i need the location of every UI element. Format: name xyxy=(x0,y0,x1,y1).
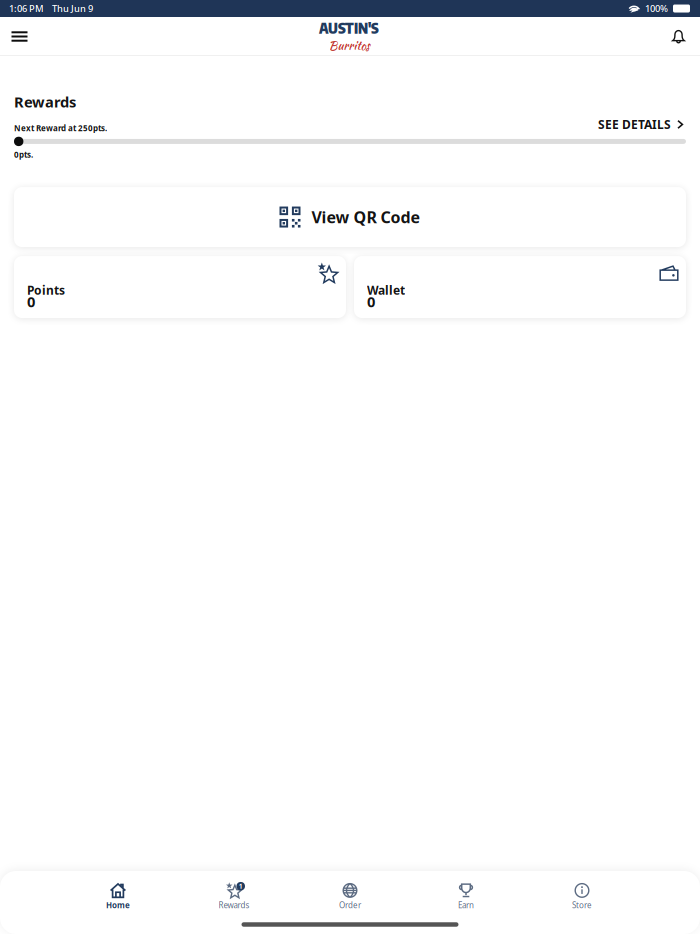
staticText: Wallet xyxy=(367,282,405,298)
staticText: Order xyxy=(339,900,361,910)
button[interactable]: View QR Code xyxy=(14,187,686,247)
staticText: 0pts. xyxy=(14,149,33,160)
button[interactable]: Notifications xyxy=(659,17,698,56)
button[interactable]: Earn xyxy=(408,878,524,914)
staticText: View QR Code xyxy=(311,206,420,228)
staticText: Earn xyxy=(458,900,474,910)
staticText: 1 xyxy=(239,882,243,891)
button[interactable]: Store xyxy=(524,878,640,914)
button[interactable]: Wallet xyxy=(354,256,686,318)
button[interactable]: Home xyxy=(60,878,176,914)
staticText: Store xyxy=(572,900,592,910)
button[interactable]: Menu xyxy=(0,17,39,56)
staticText: 1:06 PM xyxy=(9,2,44,15)
staticText: 0 xyxy=(367,292,375,311)
staticText: Next Reward at 250pts. xyxy=(14,123,107,133)
staticText: SEE DETAILS xyxy=(598,116,671,132)
staticText: 0 xyxy=(27,292,35,311)
staticText: Rewards xyxy=(14,92,76,111)
staticText: Thu Jun 9 xyxy=(44,2,93,15)
staticText: Burritos xyxy=(328,37,369,54)
staticText: Points xyxy=(27,282,65,298)
staticText: AUSTIN'S xyxy=(319,19,379,37)
staticText: 100% xyxy=(645,2,668,15)
button[interactable]: SEE DETAILS xyxy=(596,115,686,133)
staticText: Rewards xyxy=(218,900,249,910)
button[interactable]: 1 xyxy=(176,878,292,914)
staticText: Home xyxy=(106,900,130,910)
button[interactable]: Points xyxy=(14,256,346,318)
button[interactable]: Order xyxy=(292,878,408,914)
